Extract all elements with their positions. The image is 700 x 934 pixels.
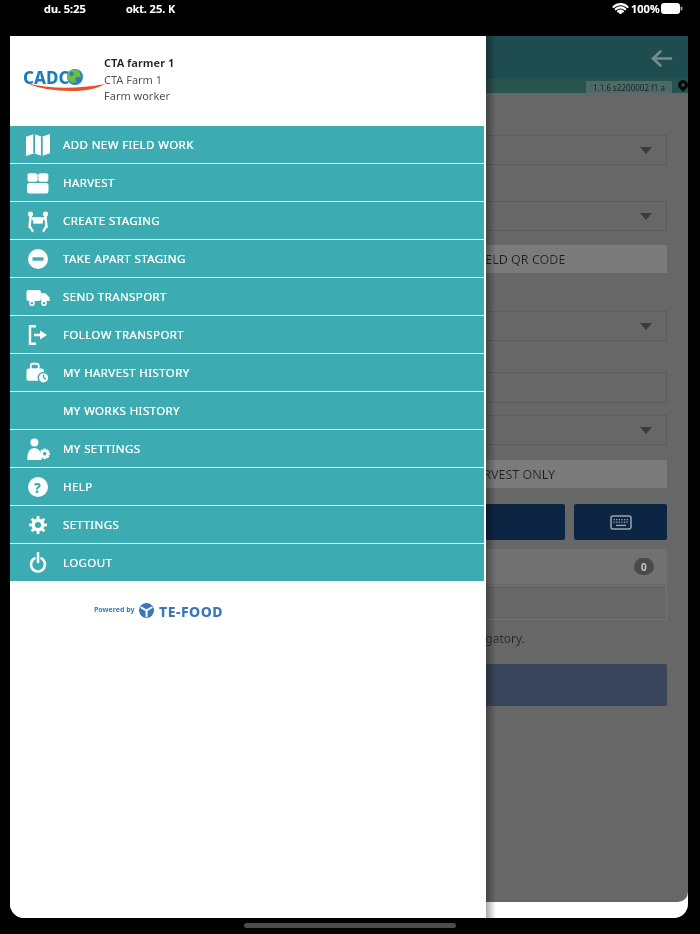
button[interactable]: Powered by <box>94 602 224 618</box>
staticText: okt. 25. K <box>126 1 176 16</box>
button[interactable]: MY SETTINGS <box>10 430 484 467</box>
staticText: HELP <box>63 479 93 495</box>
button[interactable] <box>30 504 565 540</box>
staticText: FOLLOW TRANSPORT <box>63 327 185 343</box>
button[interactable]: HARVEST <box>10 164 484 201</box>
button[interactable] <box>30 664 667 706</box>
staticText: 100% <box>631 1 660 16</box>
staticText: CTA Farm 1 <box>104 72 163 87</box>
button[interactable]: MY HARVEST HISTORY <box>10 354 484 391</box>
staticText: HARVEST <box>63 175 115 191</box>
staticText: Farm worker <box>104 88 171 103</box>
button[interactable]: HARVEST ONLY <box>30 460 667 488</box>
button[interactable]: MY WORKS HISTORY <box>10 392 484 429</box>
staticText: LOGOUT <box>63 555 113 571</box>
staticText: TAKE APART STAGING <box>63 251 186 267</box>
staticText: 1.1.6 s2200002 f1 a <box>593 82 665 93</box>
button[interactable] <box>574 504 667 540</box>
staticText: SCAN FIELD QR CODE <box>439 251 566 268</box>
staticText: ADD NEW FIELD WORK <box>63 137 194 153</box>
button[interactable]: LOGOUT <box>10 544 484 581</box>
button[interactable]: SETTINGS <box>10 506 484 543</box>
staticText: Fields marked with * are obligatory. <box>324 630 525 646</box>
staticText: MY HARVEST HISTORY <box>63 365 190 381</box>
button[interactable]: SCAN FIELD QR CODE <box>30 245 667 273</box>
button[interactable] <box>652 51 672 66</box>
button[interactable]: SEND TRANSPORT <box>10 278 484 315</box>
staticText: TE-FOOD <box>159 602 224 618</box>
staticText: HARVEST ONLY <box>466 466 556 483</box>
staticText: CADC <box>23 66 70 89</box>
staticText: ? <box>34 478 41 497</box>
staticText: du. 5:25 <box>44 1 86 16</box>
button[interactable]: CREATE STAGING <box>10 202 484 239</box>
staticText: 0 <box>641 560 647 574</box>
button[interactable]: ADD NEW FIELD WORK <box>10 126 484 163</box>
button[interactable]: FOLLOW TRANSPORT <box>10 316 484 353</box>
button[interactable]: ? <box>10 468 484 505</box>
staticText: Powered by <box>94 605 135 615</box>
staticText: MY SETTINGS <box>63 441 141 457</box>
staticText: CTA farmer 1 <box>104 55 175 70</box>
staticText: SETTINGS <box>63 517 120 533</box>
staticText: MY WORKS HISTORY <box>63 403 181 419</box>
button[interactable]: TAKE APART STAGING <box>10 240 484 277</box>
staticText: CREATE STAGING <box>63 213 161 229</box>
staticText: SEND TRANSPORT <box>63 289 167 305</box>
